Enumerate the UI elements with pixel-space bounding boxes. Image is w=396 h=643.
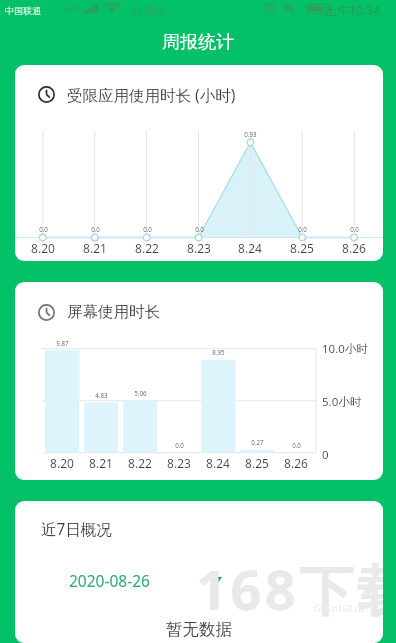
staticText: 4.83 xyxy=(95,391,108,399)
staticText: 上午10:34 xyxy=(325,2,380,18)
staticText: 9.87 xyxy=(56,339,69,347)
staticText: 8.22 xyxy=(135,240,159,256)
staticText: 8.20 xyxy=(31,240,55,256)
staticText: 2020-08-26 xyxy=(69,570,150,591)
staticText: 8.21 xyxy=(83,240,107,256)
staticText: 0 xyxy=(322,447,329,463)
button[interactable]: 2020-08-26 xyxy=(69,570,222,591)
staticText: 0.0 xyxy=(175,441,184,449)
staticText: 0.0 xyxy=(143,225,152,233)
staticText: 暂无数据 xyxy=(166,619,232,640)
staticText: 8.25 xyxy=(245,455,269,471)
staticText: 8.95 xyxy=(212,348,225,356)
staticText: 10.0小时 xyxy=(322,341,368,357)
staticText: 中国联通 xyxy=(5,5,41,16)
staticText: 0.0 xyxy=(292,441,301,449)
staticText: 8.22 xyxy=(128,455,152,471)
staticText: 0.0 xyxy=(39,225,48,233)
staticText: 8.23 xyxy=(187,240,211,256)
staticText: 8.24 xyxy=(206,455,230,471)
staticText: 0.93 xyxy=(244,130,257,138)
staticText: 213B/s xyxy=(130,3,166,18)
staticText: 8.20 xyxy=(50,455,74,471)
staticText: 周报统计 xyxy=(162,31,234,54)
staticText: 屏幕使用时长 xyxy=(67,302,160,322)
staticText: 8.26 xyxy=(342,240,366,256)
staticText: 0.27 xyxy=(251,438,264,446)
staticText: 168下载 xyxy=(196,552,383,626)
staticText: 受限应用使用时长 (小时) xyxy=(67,84,236,105)
staticText: 5.0小时 xyxy=(322,394,362,410)
staticText: 8.25 xyxy=(290,240,314,256)
staticText: 8.23 xyxy=(167,455,191,471)
staticText: 8.26 xyxy=(284,455,308,471)
staticText: 0.0 xyxy=(350,225,359,233)
staticText: 0.0 xyxy=(91,225,100,233)
staticText: 近7日概况 xyxy=(41,518,112,539)
staticText: 0.0 xyxy=(298,225,307,233)
staticText: 5.06 xyxy=(134,389,147,397)
staticText: 0.0 xyxy=(195,225,204,233)
staticText: GPS.n168.com xyxy=(314,603,372,615)
staticText: 8.24 xyxy=(238,240,262,256)
staticText: 8.21 xyxy=(89,455,113,471)
